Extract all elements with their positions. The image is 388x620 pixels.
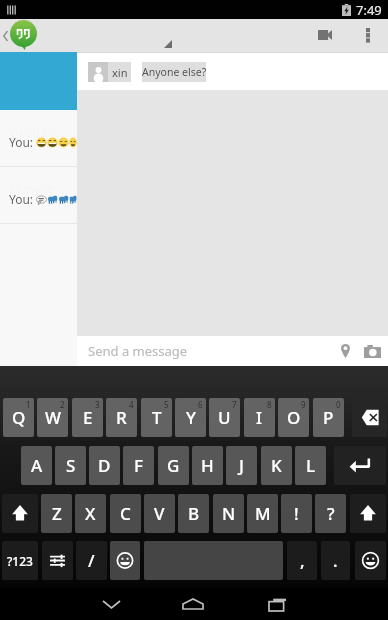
button[interactable]: I (244, 398, 275, 437)
staticText: 4 (129, 399, 134, 410)
button[interactable]: N (213, 494, 244, 533)
staticText: A (31, 454, 43, 477)
button[interactable]: Shift (350, 494, 386, 533)
staticText: You: (9, 191, 34, 207)
staticText: ?123 (7, 553, 33, 569)
staticText: yuxin he (9, 123, 57, 139)
button[interactable]: R (106, 398, 137, 437)
staticText: Z (52, 502, 62, 525)
button[interactable]: ? (315, 494, 346, 533)
button[interactable]: Share location (334, 336, 356, 366)
button[interactable]: More options (352, 19, 384, 52)
button[interactable]: / (76, 541, 107, 580)
button[interactable]: Z (41, 494, 72, 533)
staticText: T (152, 406, 162, 429)
staticText: C (120, 502, 131, 525)
staticText: I (256, 406, 263, 429)
staticText: 5 (164, 399, 169, 410)
button[interactable]: S (55, 446, 86, 485)
button[interactable]: T (141, 398, 172, 437)
button[interactable]: E (72, 398, 103, 437)
staticText: ! (294, 502, 299, 525)
button[interactable]: Shift (2, 494, 38, 533)
staticText: F (134, 454, 143, 477)
button[interactable]: Q (3, 398, 34, 437)
staticText: Y (186, 406, 196, 429)
button[interactable]: K (261, 446, 292, 485)
button[interactable]: G (158, 446, 189, 485)
staticText: , (300, 549, 305, 572)
button[interactable]: ?123 (2, 541, 38, 580)
staticText: 3 (95, 399, 100, 410)
staticText: Q (12, 406, 26, 429)
button[interactable]: ! (281, 494, 312, 533)
button[interactable]: A (21, 446, 52, 485)
button[interactable]: Enter (334, 446, 386, 485)
staticText: M (255, 502, 271, 525)
button[interactable]: L (295, 446, 326, 485)
button[interactable]: B (178, 494, 209, 533)
button[interactable]: O (278, 398, 309, 437)
staticText: E (83, 406, 93, 429)
staticText: H (201, 454, 214, 477)
staticText: J (239, 454, 244, 477)
button[interactable]: Emoji (110, 541, 140, 580)
button[interactable]: Recent apps (242, 588, 312, 620)
staticText: D (98, 454, 111, 477)
button[interactable]: W (37, 398, 68, 437)
staticText: Anyone else? (142, 65, 206, 79)
staticText: 1 (26, 399, 31, 410)
button[interactable]: Home (158, 588, 228, 620)
button[interactable]: . (321, 541, 350, 580)
button[interactable]: Keyboard settings (42, 541, 73, 580)
button[interactable]: V (144, 494, 175, 533)
staticText: O (287, 406, 301, 429)
staticText: W (45, 406, 61, 429)
staticText: V (154, 502, 165, 525)
button[interactable]: yuxin he (0, 110, 77, 166)
staticText: U (218, 406, 231, 429)
staticText: / (88, 549, 95, 572)
staticText: 6 (198, 399, 203, 410)
staticText: 7 (232, 399, 237, 410)
button[interactable]: Video call (304, 19, 346, 52)
button[interactable]: H (192, 446, 223, 485)
button[interactable]: xin (88, 62, 131, 82)
button[interactable]: Emoticon (355, 541, 386, 580)
button[interactable]: Camera (361, 336, 383, 366)
button[interactable]: , (287, 541, 317, 580)
staticText: You: (9, 134, 34, 150)
button[interactable]: xiongjie (0, 167, 77, 223)
staticText: X (85, 502, 96, 525)
button[interactable]: D (89, 446, 120, 485)
staticText: xiongjie (9, 180, 54, 196)
staticText: L (306, 454, 316, 477)
staticText: R (116, 406, 127, 429)
button[interactable]: Backspace (352, 398, 387, 437)
staticText: 0 (336, 399, 341, 410)
staticText: Send a message (88, 342, 188, 360)
button[interactable]: C (110, 494, 141, 533)
button[interactable]: M (247, 494, 278, 533)
staticText: 9 (301, 399, 306, 410)
button[interactable]: Y (175, 398, 206, 437)
button[interactable]: Anyone else? (142, 62, 206, 82)
staticText: ? (327, 502, 335, 525)
staticText: 8 (267, 399, 272, 410)
button[interactable]: P (313, 398, 344, 437)
staticText: 2 (60, 399, 65, 410)
button[interactable]: X (75, 494, 106, 533)
button[interactable]: Back (0, 19, 37, 52)
staticText: N (222, 502, 236, 525)
staticText: B (188, 502, 200, 525)
button[interactable]: U (209, 398, 240, 437)
button[interactable]: Back (76, 588, 146, 620)
staticText: 7:49 (356, 1, 382, 19)
button[interactable]: J (226, 446, 257, 485)
button[interactable]: F (123, 446, 154, 485)
staticText: P (323, 406, 334, 429)
staticText: S (66, 454, 76, 477)
staticText: K (271, 454, 282, 477)
